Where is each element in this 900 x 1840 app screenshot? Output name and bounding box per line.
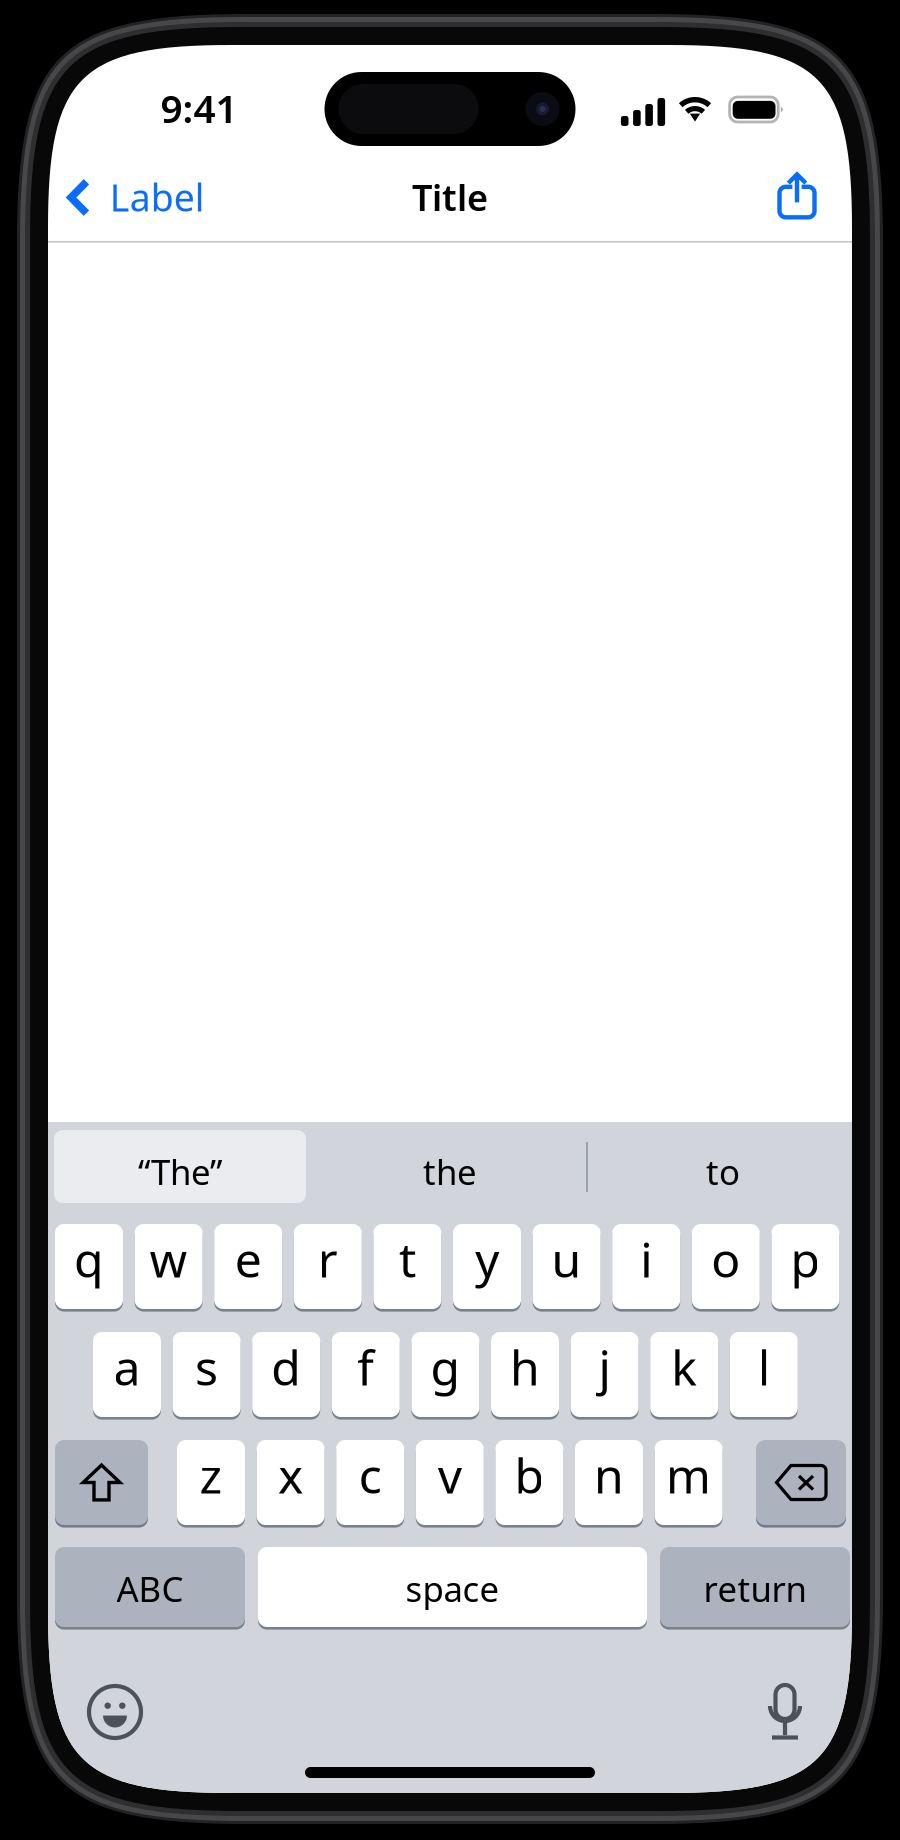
staticText: a [113, 1335, 140, 1399]
button[interactable]: g [411, 1332, 479, 1417]
button[interactable]: r [294, 1224, 362, 1309]
staticText: o [711, 1227, 740, 1291]
staticText: j [599, 1335, 611, 1399]
staticText: i [640, 1227, 652, 1291]
button[interactable]: Share [752, 154, 842, 240]
staticText: z [199, 1443, 222, 1507]
button[interactable]: f [332, 1332, 400, 1417]
button[interactable]: s [173, 1332, 241, 1417]
button[interactable]: ABC [55, 1547, 245, 1627]
button[interactable]: p [771, 1224, 839, 1309]
staticText: k [671, 1335, 697, 1399]
button[interactable]: Label [48, 154, 263, 240]
staticText: the [423, 1148, 477, 1194]
staticText: 9:41 [160, 82, 237, 134]
button[interactable]: y [453, 1224, 521, 1309]
button[interactable]: l [730, 1332, 798, 1417]
button[interactable]: to [633, 1135, 813, 1208]
button[interactable]: w [135, 1224, 203, 1309]
button[interactable]: o [692, 1224, 760, 1309]
button[interactable]: c [336, 1440, 404, 1525]
staticText: ABC [116, 1565, 183, 1611]
staticText: d [271, 1335, 301, 1399]
button[interactable]: z [177, 1440, 245, 1525]
staticText: r [318, 1227, 338, 1291]
button[interactable]: h [491, 1332, 559, 1417]
button[interactable]: v [416, 1440, 484, 1525]
staticText: space [405, 1565, 499, 1611]
staticText: q [74, 1227, 104, 1291]
button[interactable]: “The” [54, 1130, 306, 1203]
staticText: t [399, 1227, 416, 1291]
staticText: return [703, 1565, 806, 1611]
button[interactable]: b [495, 1440, 563, 1525]
button[interactable]: d [252, 1332, 320, 1417]
button[interactable]: x [257, 1440, 325, 1525]
button[interactable]: u [533, 1224, 601, 1309]
staticText: u [552, 1227, 582, 1291]
staticText: Title [412, 173, 488, 221]
button[interactable]: t [373, 1224, 441, 1309]
staticText: b [514, 1443, 544, 1507]
button[interactable]: e [214, 1224, 282, 1309]
staticText: w [150, 1227, 188, 1291]
staticText: e [235, 1227, 262, 1291]
button[interactable]: space [258, 1547, 647, 1627]
button[interactable]: k [650, 1332, 718, 1417]
staticText: h [510, 1335, 540, 1399]
button[interactable]: return [660, 1547, 850, 1627]
staticText: c [359, 1443, 382, 1507]
staticText: x [278, 1443, 303, 1507]
staticText: v [438, 1443, 462, 1507]
staticText: y [475, 1227, 499, 1291]
button[interactable]: n [575, 1440, 643, 1525]
staticText: “The” [138, 1148, 222, 1194]
button[interactable]: q [55, 1224, 123, 1309]
button[interactable]: a [93, 1332, 161, 1417]
button[interactable]: m [655, 1440, 723, 1525]
staticText: to [706, 1148, 740, 1194]
staticText: s [195, 1335, 218, 1399]
staticText: m [666, 1443, 711, 1507]
staticText: p [790, 1227, 820, 1291]
button[interactable]: Delete [756, 1440, 846, 1525]
button[interactable]: the [360, 1135, 540, 1208]
staticText: g [430, 1335, 460, 1399]
button[interactable]: j [571, 1332, 639, 1417]
staticText: Label [110, 172, 205, 222]
staticText: f [357, 1335, 374, 1399]
staticText: l [758, 1335, 770, 1399]
button[interactable]: Shift [55, 1440, 148, 1525]
button[interactable]: i [612, 1224, 680, 1309]
staticText: n [594, 1443, 624, 1507]
